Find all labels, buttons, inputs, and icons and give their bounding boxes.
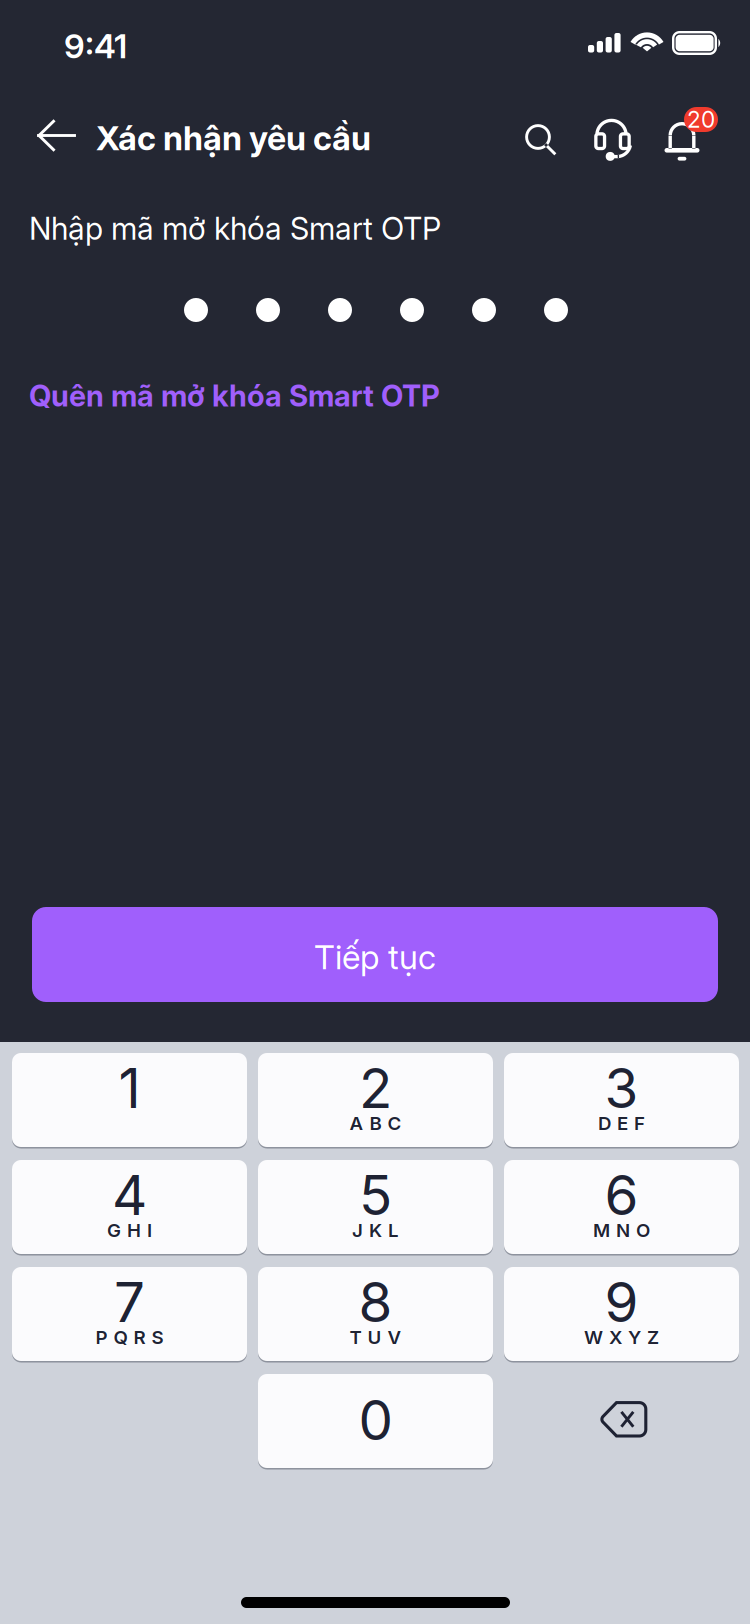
- staticText: J K L: [352, 1219, 399, 1241]
- staticText: W X Y Z: [584, 1326, 659, 1348]
- button[interactable]: 9: [504, 1267, 739, 1361]
- button[interactable]: Search: [0, 88, 55, 143]
- button[interactable]: Delete: [504, 1374, 739, 1468]
- button[interactable]: 5: [258, 1160, 493, 1254]
- button[interactable]: Customer support: [0, 88, 62, 157]
- staticText: Tiếp tục: [314, 937, 436, 977]
- staticText: 9:41: [64, 26, 127, 66]
- staticText: M N O: [593, 1219, 650, 1241]
- button[interactable]: Quên mã mở khóa Smart OTP: [0, 180, 411, 227]
- staticText: Quên mã mở khóa Smart OTP: [29, 378, 440, 413]
- staticText: 7: [114, 1269, 145, 1335]
- button[interactable]: 1: [12, 1053, 247, 1147]
- button[interactable]: 8: [258, 1267, 493, 1361]
- staticText: D E F: [598, 1112, 645, 1134]
- staticText: G H I: [107, 1219, 152, 1241]
- staticText: 5: [359, 1162, 392, 1228]
- staticText: 8: [358, 1269, 392, 1335]
- staticText: 4: [112, 1162, 147, 1228]
- button[interactable]: 7: [12, 1267, 247, 1361]
- staticText: 6: [604, 1162, 638, 1228]
- button[interactable]: Notifications: [0, 88, 72, 154]
- staticText: A B C: [349, 1112, 401, 1134]
- staticText: 2: [359, 1055, 392, 1121]
- staticText: 3: [604, 1055, 638, 1121]
- staticText: Xác nhận yêu cầu: [96, 118, 371, 158]
- button[interactable]: Back: [0, 88, 59, 139]
- staticText: 9: [604, 1269, 638, 1335]
- button[interactable]: 2: [258, 1053, 493, 1147]
- button[interactable]: 3: [504, 1053, 739, 1147]
- staticText: 1: [118, 1055, 140, 1121]
- button[interactable]: Tiếp tục: [0, 180, 686, 275]
- staticText: 0: [358, 1387, 392, 1453]
- staticText: P Q R S: [95, 1326, 163, 1348]
- button[interactable]: 0: [258, 1374, 493, 1468]
- staticText: 20: [687, 106, 715, 133]
- button[interactable]: 4: [12, 1160, 247, 1254]
- staticText: T U V: [349, 1326, 401, 1348]
- staticText: Nhập mã mở khóa Smart OTP: [29, 210, 441, 247]
- button[interactable]: 6: [504, 1160, 739, 1254]
